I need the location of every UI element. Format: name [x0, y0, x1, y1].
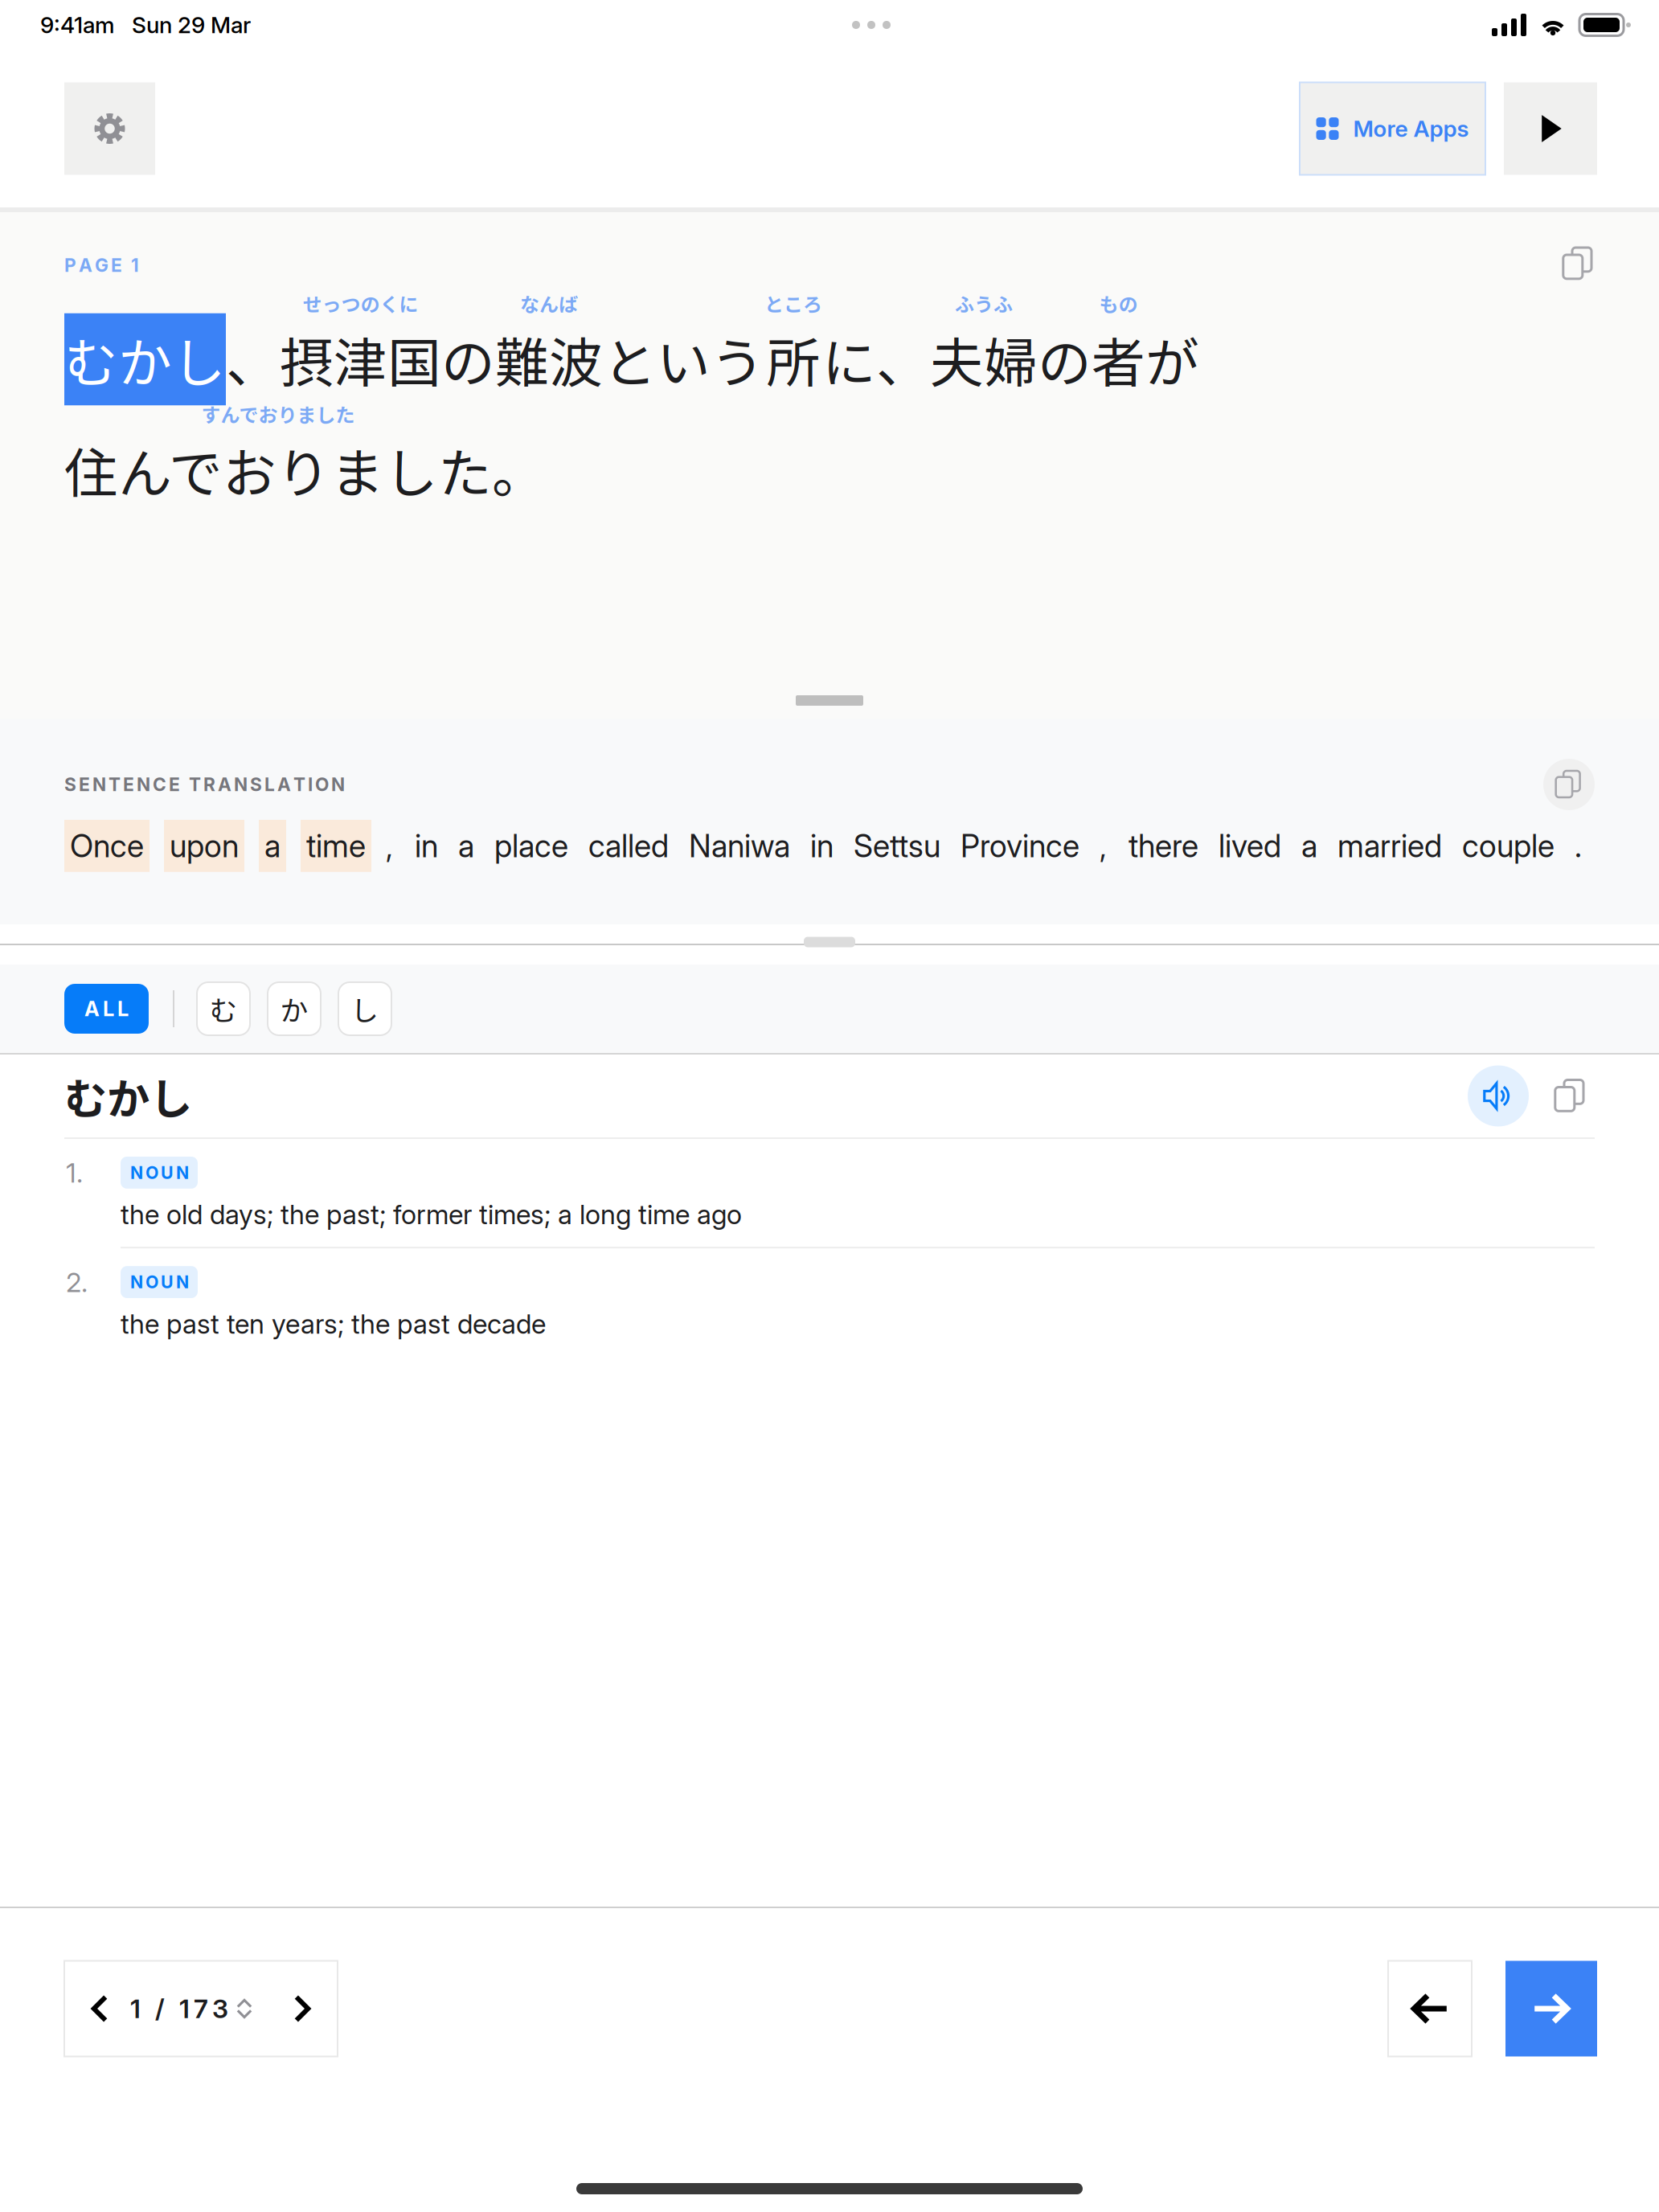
- staticText: More Apps: [1353, 115, 1469, 142]
- staticText: S E N T E N C E T R A N S L A T I O N: [64, 773, 345, 796]
- staticText: 摂津国: [280, 321, 441, 398]
- staticText: place: [494, 827, 568, 865]
- staticText: 9:41am: [40, 11, 115, 39]
- staticText: Once: [70, 827, 144, 865]
- button[interactable]: Copy translation: [1543, 759, 1595, 810]
- staticText: なんば: [520, 289, 578, 317]
- button[interactable]: Play: [1504, 82, 1597, 175]
- staticText: 者: [1092, 321, 1145, 398]
- staticText: か: [280, 989, 308, 1029]
- staticText: 、: [226, 321, 280, 398]
- staticText: 1 / 1 7 3: [130, 1993, 228, 2024]
- staticText: という: [603, 321, 764, 398]
- staticText: the past ten years; the past decade: [121, 1308, 546, 1340]
- staticText: せっつのくに: [303, 289, 418, 317]
- staticText: 2.: [66, 1266, 88, 1298]
- staticText: もの: [1099, 289, 1138, 317]
- staticText: in: [415, 827, 438, 865]
- staticText: ふうふ: [955, 289, 1013, 317]
- staticText: 難波: [495, 321, 603, 398]
- staticText: a: [1301, 827, 1317, 865]
- staticText: に: [822, 321, 876, 398]
- button[interactable]: Forward: [1505, 1961, 1597, 2056]
- button[interactable]: Settings: [64, 82, 155, 175]
- staticText: し: [351, 989, 379, 1029]
- button[interactable]: む: [197, 982, 250, 1035]
- staticText: couple: [1462, 827, 1555, 865]
- staticText: すんでおりました: [201, 400, 355, 428]
- staticText: の: [1038, 321, 1092, 398]
- staticText: の: [441, 321, 495, 398]
- staticText: Settsu: [854, 827, 940, 865]
- staticText: [135, 289, 155, 317]
- staticText: A L L: [84, 996, 129, 1021]
- button[interactable]: Next page: [272, 1978, 333, 2039]
- staticText: in: [810, 827, 834, 865]
- staticText: lived: [1219, 827, 1281, 865]
- button[interactable]: Previous page: [69, 1978, 130, 2039]
- staticText: ,: [1100, 827, 1107, 865]
- staticText: ところ: [764, 289, 822, 317]
- staticText: P A G E 1: [64, 254, 139, 276]
- button[interactable]: し: [338, 982, 391, 1035]
- staticText: 1.: [66, 1157, 83, 1189]
- button[interactable]: か: [268, 982, 321, 1035]
- staticText: the old days; the past; former times; a …: [121, 1198, 742, 1231]
- staticText: 夫婦: [930, 321, 1038, 398]
- staticText: Sun 29 Mar: [132, 11, 251, 39]
- staticText: N O U N: [130, 1272, 189, 1292]
- staticText: 。: [492, 431, 546, 508]
- button[interactable]: More Apps: [1300, 82, 1485, 175]
- staticText: married: [1337, 827, 1442, 865]
- staticText: 、: [876, 321, 930, 398]
- staticText: 住んでおりました: [64, 431, 492, 508]
- button[interactable]: Play audio: [1468, 1065, 1529, 1126]
- staticText: むかし: [64, 321, 226, 398]
- staticText: called: [588, 827, 669, 865]
- staticText: むかし: [64, 1065, 192, 1127]
- staticText: N O U N: [130, 1162, 189, 1183]
- staticText: upon: [170, 827, 239, 865]
- staticText: time: [306, 827, 366, 865]
- staticText: Naniwa: [689, 827, 790, 865]
- button[interactable]: Copy word: [1540, 1065, 1601, 1126]
- staticText: 所: [766, 321, 820, 398]
- staticText: が: [1145, 321, 1199, 398]
- button[interactable]: Back: [1388, 1961, 1472, 2056]
- staticText: .: [1575, 827, 1582, 865]
- staticText: ,: [386, 827, 393, 865]
- staticText: a: [264, 827, 281, 865]
- staticText: Province: [961, 827, 1079, 865]
- button[interactable]: A L L: [64, 984, 149, 1034]
- staticText: there: [1129, 827, 1198, 865]
- staticText: a: [458, 827, 474, 865]
- button[interactable]: Copy sentence: [1563, 251, 1595, 280]
- staticText: む: [209, 989, 238, 1029]
